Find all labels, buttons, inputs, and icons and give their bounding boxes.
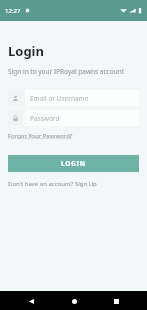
button[interactable]: LOGIN [8, 155, 139, 172]
button[interactable]: Email or Username [8, 90, 139, 106]
staticText: Login [8, 42, 44, 60]
button[interactable]: Don't have an account? Sign Up [8, 180, 97, 188]
button[interactable]: Recents [107, 292, 125, 310]
staticText: Sign in to your IPRoyal pawns account [8, 67, 125, 76]
button[interactable]: Back [22, 292, 40, 310]
staticText: Email or Username [30, 94, 89, 103]
staticText: LOGIN [61, 159, 86, 168]
button[interactable]: Forgot Your Password? [8, 132, 73, 140]
button[interactable]: Home [65, 292, 83, 310]
staticText: Password [30, 114, 60, 123]
staticText: 12:27 [5, 7, 21, 15]
button[interactable]: Password [8, 110, 139, 126]
